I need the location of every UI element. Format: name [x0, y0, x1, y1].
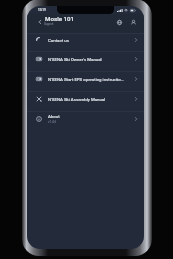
staticText: N'SENA Ski Owner's Manual [48, 57, 102, 62]
staticText: Mosle 101 [45, 15, 75, 22]
button[interactable]: N'SENA Ski Owner's Manual [27, 51, 144, 71]
button[interactable]: About [27, 111, 144, 132]
button[interactable]: N'SENA Ski Assembly Manual [27, 91, 144, 111]
button[interactable]: Language [113, 16, 126, 29]
staticText: N'SENA Start EPS operating instructio… [48, 77, 124, 82]
staticText: N'SENA Ski Assembly Manual [48, 97, 106, 102]
staticText: Support [44, 22, 54, 25]
staticText: 13:19 [38, 8, 46, 12]
button[interactable]: Back [34, 16, 45, 27]
button[interactable]: Contact us [27, 33, 144, 51]
button[interactable]: Account [127, 16, 140, 29]
staticText: Contact us [48, 38, 69, 43]
staticText: About [48, 114, 60, 119]
button[interactable]: N'SENA Start EPS operating instructio… [27, 71, 144, 91]
staticText: v1.4.6 [48, 120, 57, 124]
